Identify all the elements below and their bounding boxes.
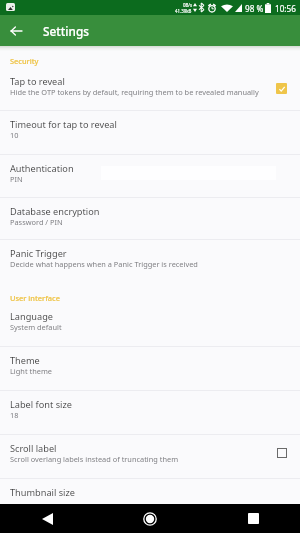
staticText: Label font size (10, 398, 72, 411)
staticText: Database encryption (10, 205, 100, 218)
button[interactable]: Database encryption (0, 198, 300, 239)
button[interactable]: Theme (0, 347, 300, 390)
button[interactable]: Label font size (0, 391, 300, 434)
staticText: 0B/s (183, 2, 193, 8)
staticText: Security (10, 56, 39, 66)
staticText: Scroll label (10, 442, 57, 455)
staticText: Scroll overlang labels instead of trunca… (10, 454, 179, 464)
button[interactable]: Authentication (0, 155, 300, 197)
staticText: Settings (43, 23, 89, 39)
staticText: Theme (10, 354, 40, 367)
staticText: System default (10, 322, 62, 332)
staticText: Authentication (10, 162, 74, 175)
button[interactable]: Recent apps (233, 504, 273, 533)
staticText: Language (10, 310, 53, 323)
staticText: 98 % (245, 3, 264, 14)
staticText: 10 (10, 130, 19, 140)
staticText: Timeout for tap to reveal (10, 118, 117, 131)
staticText: Decide what happens when a Panic Trigger… (10, 259, 198, 269)
staticText: Tap to reveal (10, 75, 65, 88)
staticText: User interface (10, 293, 60, 303)
button[interactable]: Language (0, 303, 300, 346)
button[interactable]: Tap to reveal (0, 68, 300, 110)
button[interactable]: Panic Trigger (0, 240, 300, 280)
button[interactable]: Timeout for tap to reveal (0, 111, 300, 154)
staticText: PIN (10, 174, 23, 184)
button[interactable]: Back (27, 504, 67, 533)
button[interactable]: Home (130, 504, 170, 533)
staticText: Light theme (10, 366, 52, 376)
button[interactable]: Navigate up (0, 15, 31, 46)
staticText: 18 (10, 410, 19, 420)
staticText: Panic Trigger (10, 247, 67, 260)
button[interactable]: Thumbnail size (0, 479, 300, 504)
staticText: 10:56 (275, 3, 296, 14)
staticText: Password / PIN (10, 217, 63, 227)
button[interactable]: Scroll label (0, 435, 300, 478)
staticText: 41.39kB/s (175, 8, 193, 14)
staticText: Thumbnail size (10, 486, 75, 499)
staticText: Hide the OTP tokens by default, requirin… (10, 87, 259, 97)
